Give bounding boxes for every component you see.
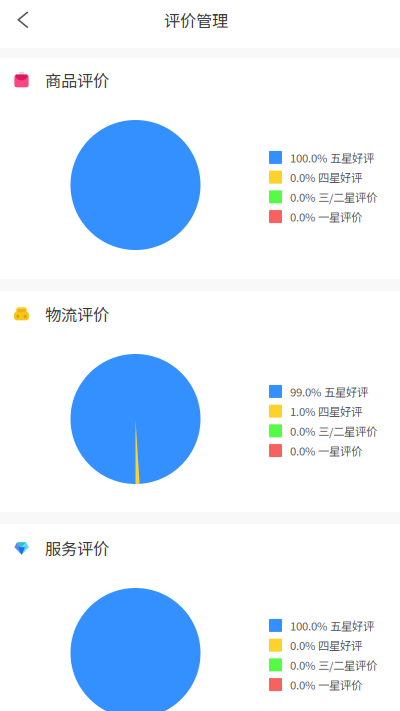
- staticText: 99.0% 五星好评: [290, 383, 368, 400]
- staticText: 0.0% 一星评价: [290, 442, 362, 459]
- staticText: 评价管理: [164, 8, 228, 32]
- button[interactable]: Back: [0, 2, 44, 46]
- staticText: 0.0% 三/二星评价: [290, 189, 377, 205]
- staticText: 0.0% 一星评价: [290, 676, 362, 693]
- staticText: 100.0% 五星好评: [290, 149, 374, 166]
- staticText: 1.0% 四星好评: [290, 403, 362, 419]
- staticText: 商品评价: [45, 68, 109, 92]
- staticText: 0.0% 一星评价: [290, 208, 362, 225]
- staticText: 服务评价: [45, 536, 109, 560]
- staticText: 100.0% 五星好评: [290, 617, 374, 634]
- staticText: 0.0% 三/二星评价: [290, 423, 377, 439]
- staticText: 0.0% 四星好评: [290, 637, 362, 653]
- staticText: 0.0% 四星好评: [290, 169, 362, 185]
- staticText: 物流评价: [45, 302, 109, 326]
- staticText: 0.0% 三/二星评价: [290, 657, 377, 673]
